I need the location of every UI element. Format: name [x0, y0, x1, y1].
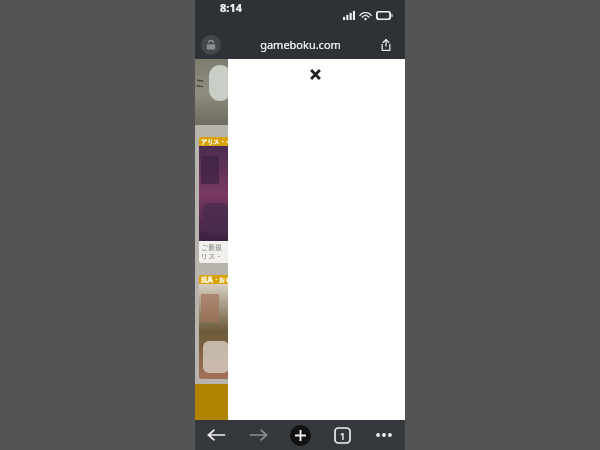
button[interactable]: More options — [363, 420, 405, 450]
staticText: ご新規 — [201, 243, 223, 252]
button[interactable]: ホーム — [195, 384, 405, 420]
button[interactable]: アリス・４ — [199, 137, 401, 263]
button[interactable]: Page info — [201, 35, 221, 55]
staticText: リス・ — [201, 252, 223, 261]
button[interactable]: Tabs: 1 — [321, 420, 363, 450]
button[interactable]: Back — [195, 420, 237, 450]
button[interactable]: Forward — [237, 420, 279, 450]
button[interactable]: Share — [375, 34, 397, 56]
button[interactable]: gameboku.com — [225, 37, 375, 52]
staticText: 1 — [340, 430, 346, 442]
button[interactable]: 玩具・おも — [199, 275, 401, 379]
staticText: アリス・４ — [201, 138, 232, 146]
button[interactable]: Close — [302, 61, 328, 87]
staticText: gameboku.com — [260, 37, 341, 52]
staticText: 玩具・おも — [201, 276, 232, 284]
staticText: 8:14 — [220, 0, 242, 15]
button[interactable]: New tab — [279, 420, 321, 450]
